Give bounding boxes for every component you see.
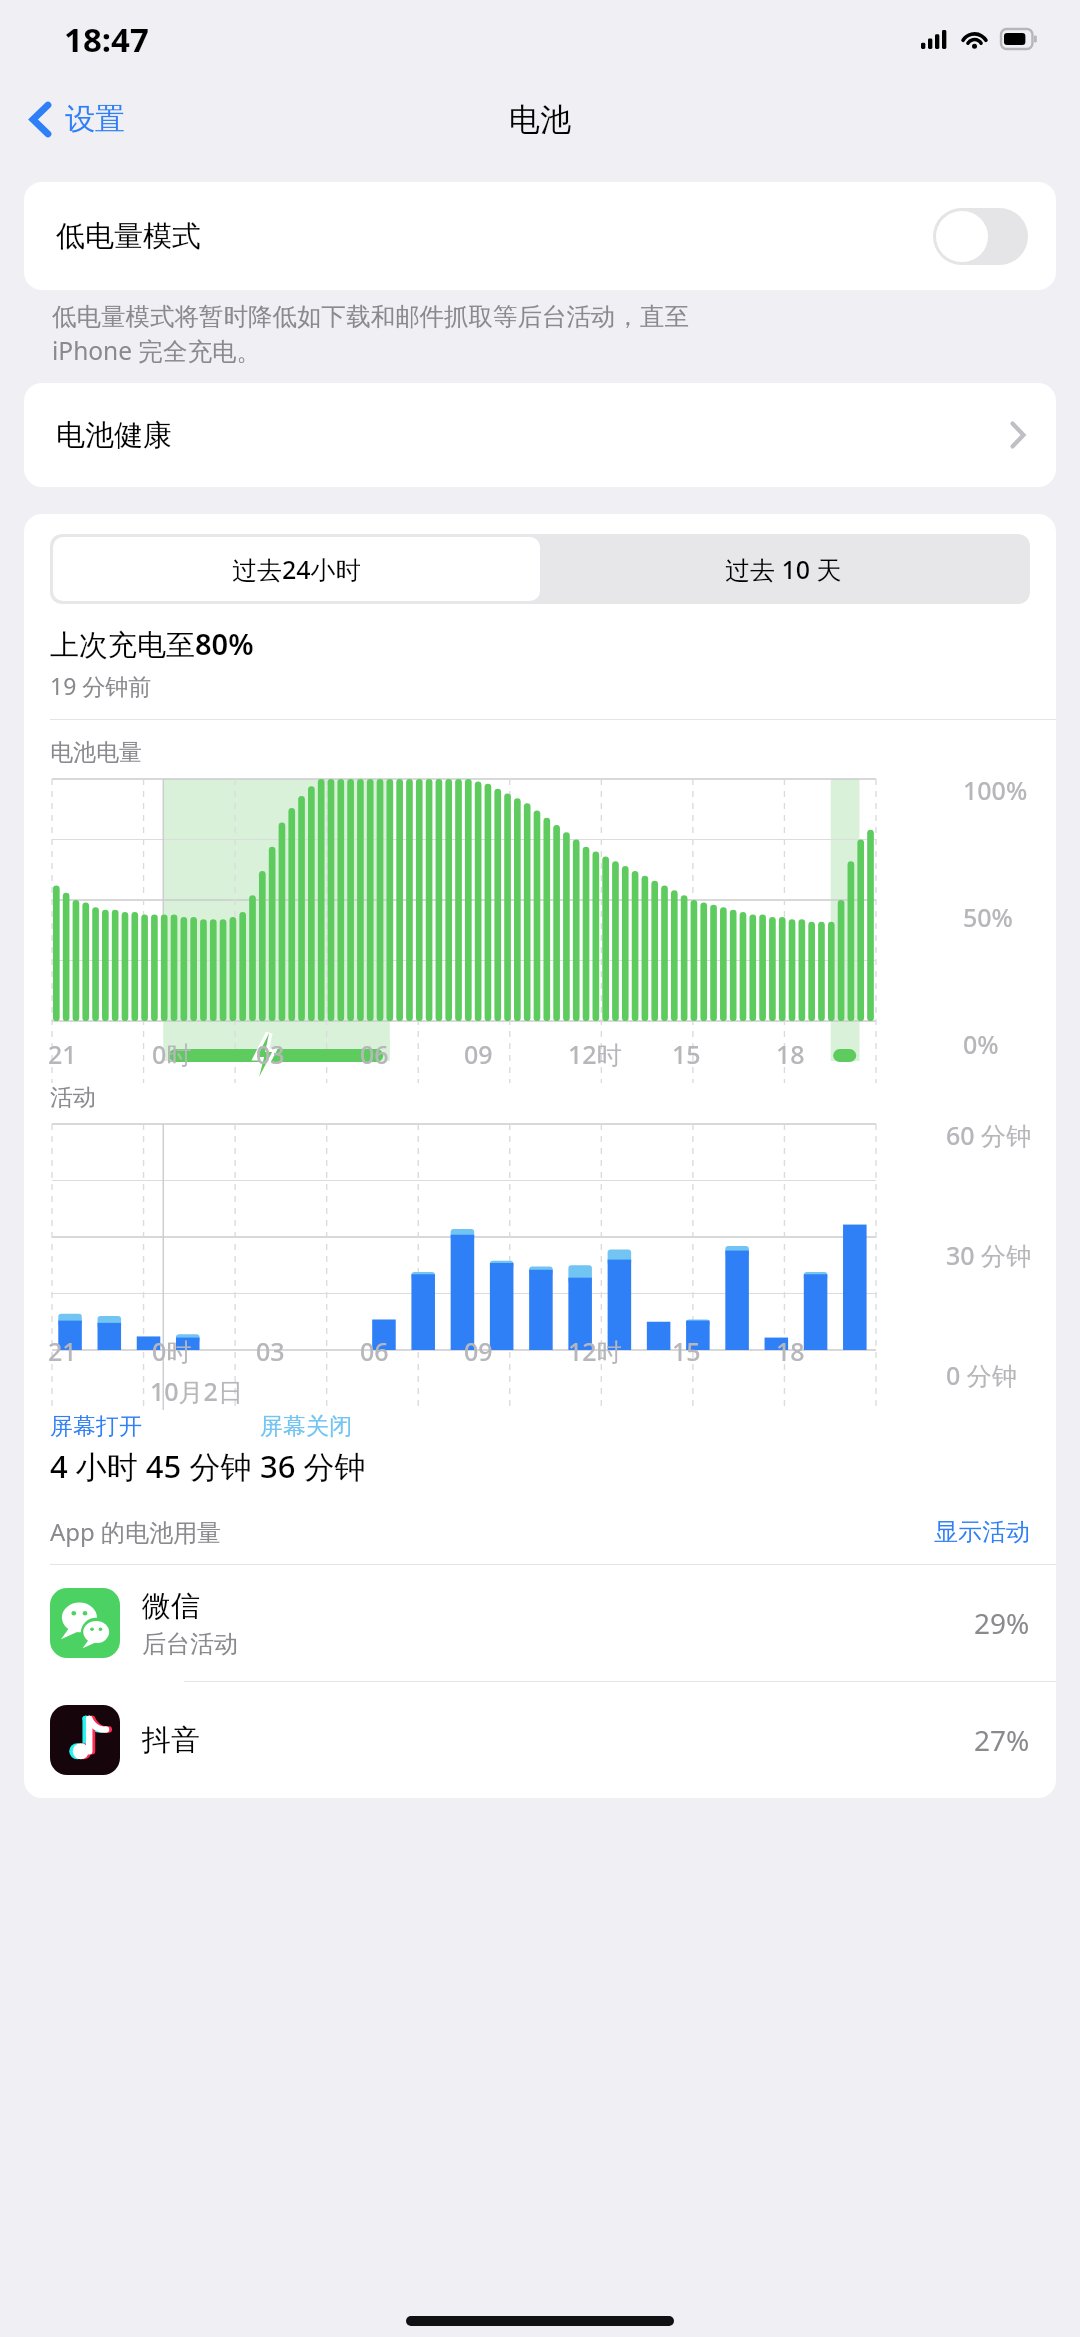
staticText: 100% [963, 773, 1028, 807]
staticText: 过去24小时 [232, 552, 361, 586]
staticText: 电池电量 [50, 738, 142, 767]
staticText: 03 [256, 1037, 285, 1071]
staticText: 0 分钟 [946, 1358, 1017, 1392]
staticText: 09 [464, 1334, 493, 1368]
staticText: 21 [48, 1037, 77, 1071]
staticText: 18:47 [64, 17, 149, 62]
staticText: 09 [464, 1037, 493, 1071]
staticText: 低电量模式将暂时降低如下载和邮件抓取等后台活动，直至 iPhone 完全充电。 [52, 301, 689, 368]
button[interactable]: 微信 [24, 1565, 1056, 1681]
button[interactable]: 过去24小时 [53, 537, 540, 601]
staticText: 18 [776, 1334, 805, 1368]
button[interactable]: 过去 10 天 [540, 537, 1027, 601]
staticText: 03 [256, 1334, 285, 1368]
staticText: 21 [48, 1334, 77, 1368]
staticText: 06 [360, 1037, 389, 1071]
staticText: 显示活动 [934, 1517, 1030, 1547]
staticText: 微信 [142, 1588, 200, 1625]
staticText: 电池 [509, 100, 571, 139]
staticText: 12时 [568, 1334, 622, 1368]
staticText: 12时 [568, 1037, 622, 1071]
staticText: 活动 [50, 1083, 96, 1112]
staticText: 电池健康 [56, 417, 1010, 454]
staticText: 15 [672, 1334, 701, 1368]
staticText: 30 分钟 [946, 1238, 1032, 1272]
staticText: 后台活动 [142, 1629, 238, 1659]
staticText: 屏幕打开 [50, 1412, 142, 1441]
other: Low Power Mode toggle [933, 208, 1028, 265]
button[interactable]: 设置 [0, 78, 143, 160]
staticText: 10月2日 [150, 1374, 243, 1408]
staticText: 上次充电至80% [50, 624, 254, 664]
staticText: App 的电池用量 [50, 1515, 934, 1548]
staticText: 4 小时 45 分钟 [50, 1445, 252, 1487]
button[interactable]: 低电量模式 [24, 182, 1056, 290]
staticText: 0时 [152, 1037, 192, 1071]
staticText: 29% [974, 1604, 1030, 1642]
staticText: 15 [672, 1037, 701, 1071]
staticText: 60 分钟 [946, 1118, 1032, 1152]
staticText: 抖音 [142, 1722, 200, 1759]
button[interactable]: 显示活动 [934, 1517, 1030, 1547]
button[interactable]: 电池健康 [24, 383, 1056, 487]
staticText: 过去 10 天 [725, 552, 842, 586]
staticText: 设置 [65, 100, 125, 138]
staticText: 50% [963, 900, 1013, 934]
staticText: 06 [360, 1334, 389, 1368]
button[interactable]: 抖音 [24, 1682, 1056, 1798]
staticText: 0% [963, 1027, 999, 1061]
staticText: 18 [776, 1037, 805, 1071]
staticText: 屏幕关闭 [260, 1412, 352, 1441]
staticText: 36 分钟 [260, 1445, 366, 1487]
staticText: 0时 [152, 1334, 192, 1368]
staticText: 低电量模式 [56, 218, 933, 255]
staticText: 19 分钟前 [50, 670, 152, 701]
staticText: 27% [974, 1721, 1030, 1759]
